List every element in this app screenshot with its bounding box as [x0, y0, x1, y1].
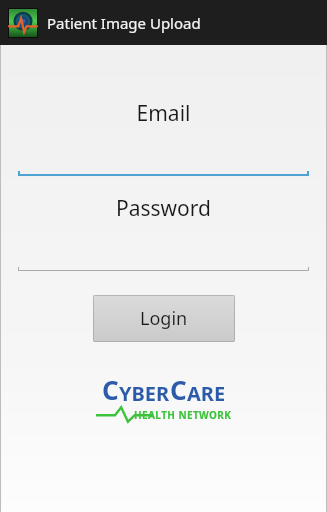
- other: App icon: [9, 9, 37, 37]
- staticText: Login: [140, 306, 188, 331]
- staticText: Email: [18, 99, 309, 128]
- staticText: C: [170, 372, 187, 407]
- staticText: C: [102, 372, 119, 407]
- staticText: HEALTH NETWORK: [134, 408, 232, 422]
- button[interactable]: Password: [18, 194, 309, 271]
- staticText: ARE: [187, 380, 226, 407]
- button[interactable]: Login: [93, 295, 235, 342]
- staticText: YBER: [119, 380, 170, 407]
- button[interactable]: Email: [18, 99, 309, 176]
- staticText: Patient Image Upload: [47, 13, 201, 33]
- staticText: Password: [18, 194, 309, 223]
